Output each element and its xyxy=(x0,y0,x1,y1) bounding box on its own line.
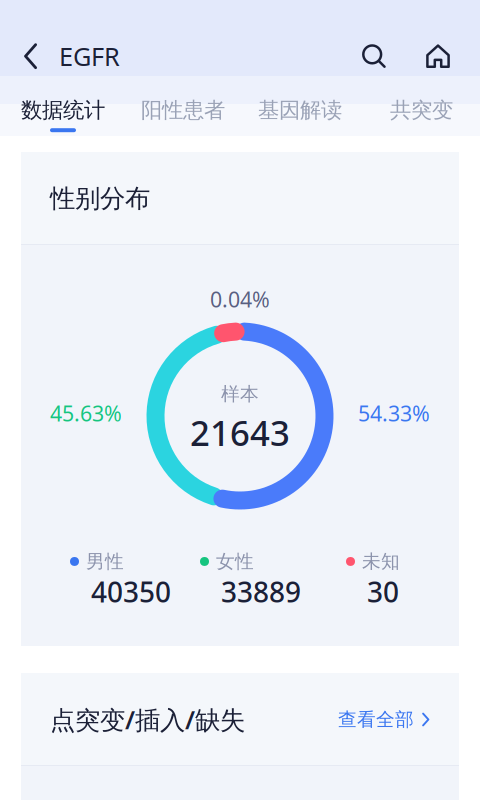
staticText: 未知 xyxy=(362,550,400,573)
button[interactable]: Search xyxy=(353,35,395,77)
staticText: 点突变/插入/缺失 xyxy=(50,703,245,736)
staticText: 女性 xyxy=(216,550,254,573)
button[interactable]: 基因解读 xyxy=(258,96,342,132)
button[interactable]: EGFR xyxy=(21,31,132,81)
staticText: 45.63% xyxy=(50,399,122,427)
staticText: 33889 xyxy=(221,573,301,610)
staticText: EGFR xyxy=(59,39,120,73)
staticText: 54.33% xyxy=(358,399,430,427)
staticText: 21643 xyxy=(190,409,290,455)
staticText: 共突变 xyxy=(390,97,453,123)
staticText: 阳性患者 xyxy=(141,97,225,123)
button[interactable]: 阳性患者 xyxy=(141,96,225,132)
staticText: 男性 xyxy=(86,550,124,573)
staticText: 基因解读 xyxy=(258,97,342,123)
staticText: 0.04% xyxy=(210,285,270,313)
staticText: 样本 xyxy=(221,382,259,405)
staticText: 30 xyxy=(367,573,399,610)
staticText: 查看全部 xyxy=(338,708,414,731)
button[interactable]: Home xyxy=(417,35,459,77)
staticText: 40350 xyxy=(91,573,171,610)
staticText: 性别分布 xyxy=(50,183,150,214)
button[interactable]: 数据统计 xyxy=(21,96,105,132)
button[interactable]: 共突变 xyxy=(390,96,453,132)
staticText: 数据统计 xyxy=(21,97,105,123)
button[interactable]: 查看全部 xyxy=(338,700,430,739)
